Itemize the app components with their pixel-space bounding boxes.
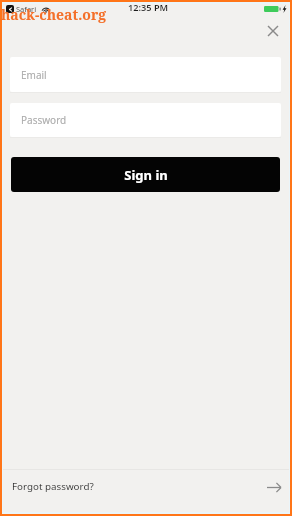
button[interactable]: Continue — [265, 478, 283, 496]
staticText: Forgot password? — [12, 480, 94, 493]
button[interactable]: Email — [10, 57, 281, 92]
staticText: Safari — [16, 4, 37, 14]
staticText: hack-cheat.org — [1, 5, 107, 24]
staticText: Sign in — [124, 166, 168, 184]
staticText: Email — [21, 68, 47, 82]
staticText: 12:35 PM — [128, 1, 169, 14]
button[interactable]: Close — [262, 20, 283, 41]
button[interactable]: Password — [10, 103, 281, 137]
button[interactable]: Forgot password? — [3, 470, 289, 512]
button[interactable]: Sign in — [11, 157, 280, 192]
staticText: Password — [21, 113, 67, 127]
